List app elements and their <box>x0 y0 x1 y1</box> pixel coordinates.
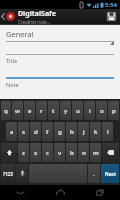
button[interactable]: Back <box>0 185 40 200</box>
button[interactable]: y <box>60 101 71 120</box>
staticText: DigitalSafe <box>18 9 56 19</box>
staticText: j <box>83 128 85 136</box>
staticText: v <box>58 149 62 157</box>
staticText: ?123 <box>3 171 13 177</box>
button[interactable]: z <box>18 143 29 162</box>
staticText: Title <box>6 57 17 64</box>
button[interactable]: n <box>78 143 89 162</box>
staticText: u <box>76 107 80 115</box>
button[interactable]: e <box>24 101 35 120</box>
button[interactable]: q <box>1 101 11 120</box>
button[interactable]: h <box>66 122 77 141</box>
button[interactable]: Home <box>40 185 80 200</box>
staticText: q <box>4 107 8 115</box>
staticText: h <box>70 128 74 136</box>
button[interactable]: Shift <box>1 143 17 162</box>
button[interactable]: p <box>108 101 119 120</box>
staticText: r <box>40 107 43 115</box>
button[interactable]: a <box>6 122 17 141</box>
staticText: Note <box>6 81 19 88</box>
button[interactable]: c <box>42 143 53 162</box>
button[interactable]: Space <box>29 164 87 183</box>
staticText: p <box>112 107 116 115</box>
button[interactable]: t <box>48 101 59 120</box>
button[interactable]: i <box>84 101 95 120</box>
staticText: o <box>100 107 104 115</box>
staticText: . <box>93 170 95 178</box>
staticText: z <box>22 149 25 157</box>
button[interactable]: Title <box>0 47 120 64</box>
button[interactable]: w <box>12 101 23 120</box>
button[interactable]: f <box>42 122 53 141</box>
staticText: m <box>93 149 99 157</box>
button[interactable]: r <box>36 101 47 120</box>
button[interactable]: g <box>54 122 65 141</box>
staticText: a <box>10 128 14 136</box>
staticText: b <box>70 149 74 157</box>
button[interactable]: Backspace <box>102 143 119 162</box>
button[interactable]: s <box>18 122 29 141</box>
staticText: General <box>6 29 34 39</box>
staticText: g <box>58 128 62 136</box>
staticText: Next <box>105 171 116 177</box>
button[interactable]: x <box>30 143 41 162</box>
button[interactable]: Voice input <box>16 164 28 183</box>
button[interactable]: v <box>54 143 65 162</box>
button[interactable]: u <box>72 101 83 120</box>
button[interactable]: m <box>90 143 101 162</box>
staticText: c <box>46 149 49 157</box>
button[interactable]: Recent apps <box>80 185 120 200</box>
staticText: 5:54 <box>105 1 117 9</box>
button[interactable]: j <box>78 122 89 141</box>
button[interactable]: k <box>90 122 101 141</box>
staticText: i <box>89 107 91 115</box>
button[interactable]: Save <box>102 9 120 24</box>
staticText: s <box>22 128 25 136</box>
staticText: l <box>107 128 109 136</box>
staticText: f <box>46 128 49 136</box>
button[interactable]: d <box>30 122 41 141</box>
button[interactable]: l <box>102 122 113 141</box>
button[interactable]: o <box>96 101 107 120</box>
staticText: d <box>34 128 38 136</box>
button[interactable]: b <box>66 143 77 162</box>
button[interactable]: Navigate up <box>0 9 17 24</box>
button[interactable]: General <box>0 29 120 45</box>
staticText: k <box>94 128 98 136</box>
staticText: w <box>15 107 20 115</box>
staticText: Creating note... <box>18 19 51 24</box>
staticText: e <box>28 107 32 115</box>
staticText: t <box>52 107 55 115</box>
staticText: x <box>34 149 38 157</box>
button[interactable]: . <box>88 164 100 183</box>
staticText: y <box>64 107 68 115</box>
button[interactable]: Next <box>101 164 119 183</box>
button[interactable]: Note <box>0 70 120 88</box>
staticText: n <box>82 149 86 157</box>
button[interactable]: ?123 <box>1 164 15 183</box>
